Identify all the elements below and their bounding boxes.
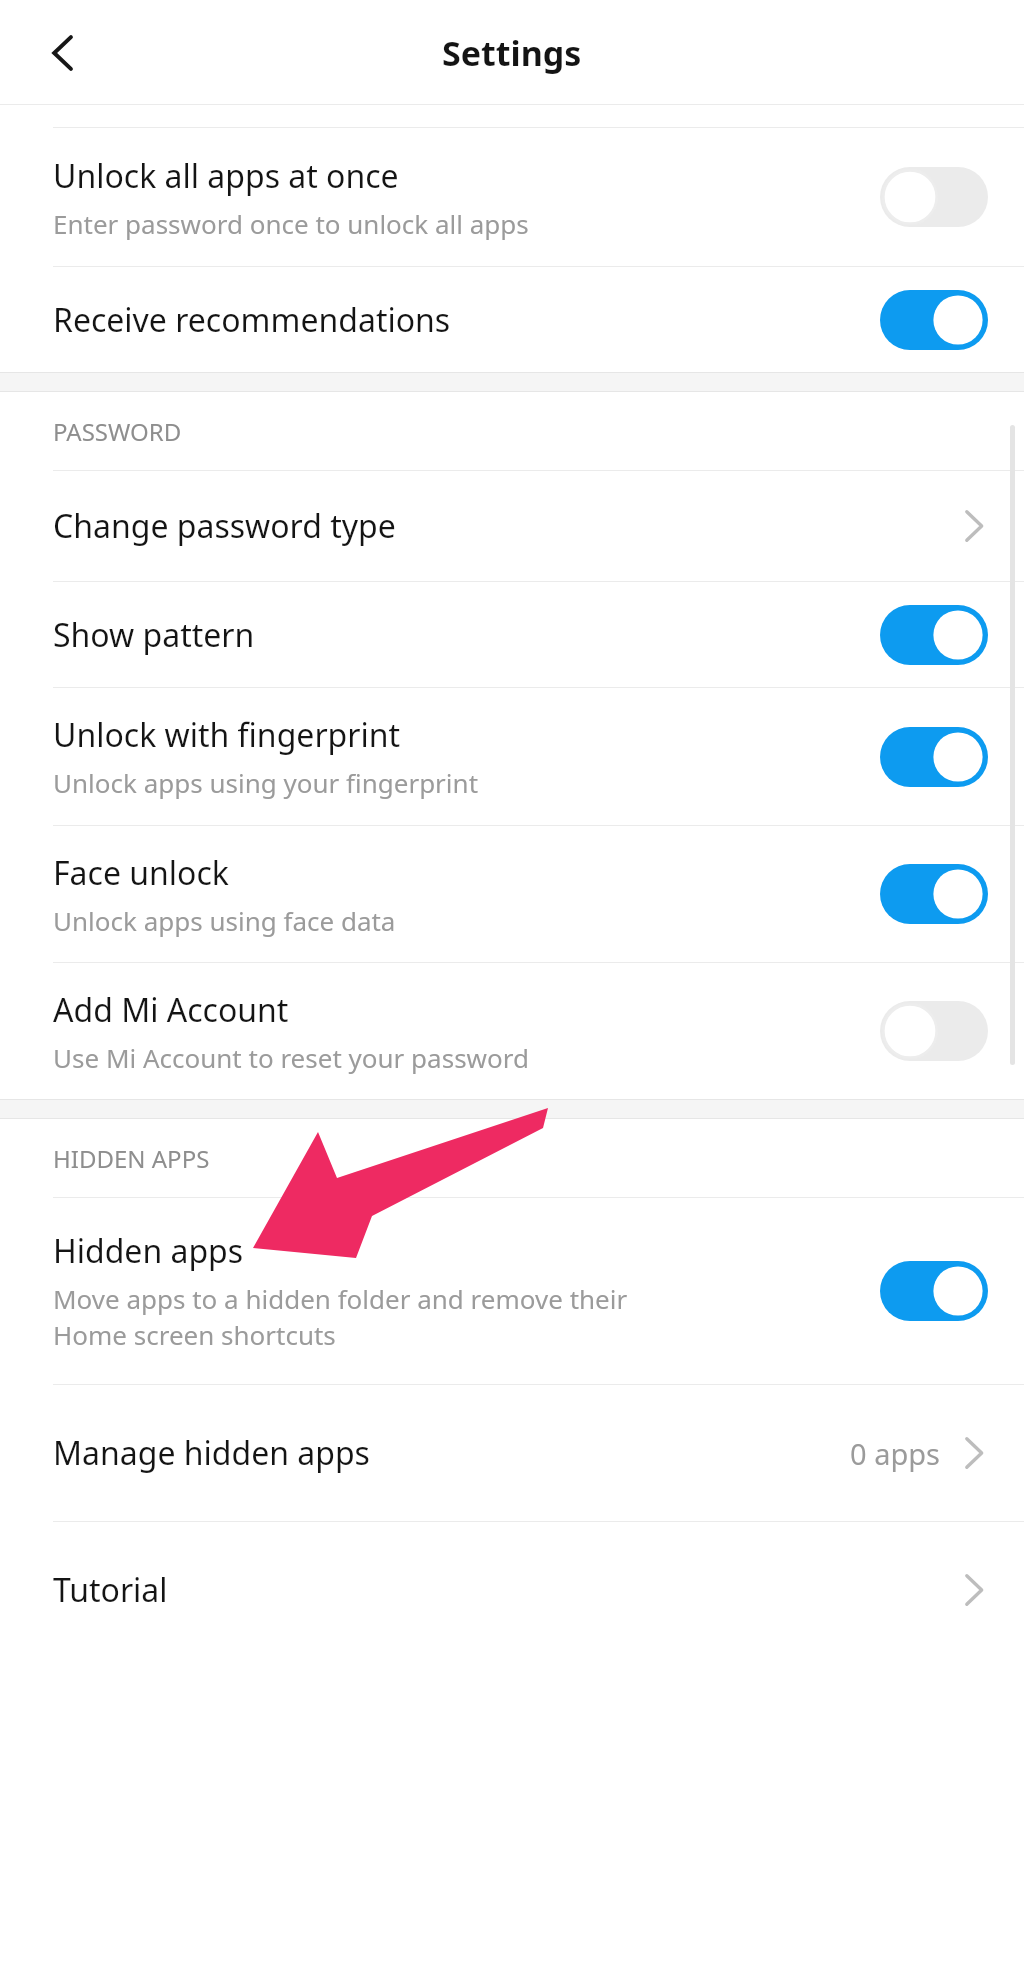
staticText: Unlock apps using face data bbox=[53, 903, 396, 938]
button[interactable]: Add Mi Account bbox=[0, 963, 1024, 1099]
staticText: Unlock all apps at once bbox=[53, 154, 399, 198]
staticText: Show pattern bbox=[53, 613, 255, 657]
staticText: Unlock apps using your fingerprint bbox=[53, 765, 479, 800]
button[interactable]: Face unlock bbox=[0, 826, 1024, 962]
button[interactable]: Back bbox=[20, 10, 106, 96]
staticText: Face unlock bbox=[53, 851, 229, 895]
button[interactable]: Hidden apps bbox=[0, 1198, 1024, 1384]
staticText: Unlock with fingerprint bbox=[53, 713, 401, 757]
staticText: Change password type bbox=[53, 504, 962, 548]
staticText: Add Mi Account bbox=[53, 988, 289, 1032]
button[interactable]: Enabled bbox=[880, 290, 988, 350]
staticText: 0 apps bbox=[850, 1434, 940, 1473]
staticText: Tutorial bbox=[53, 1568, 962, 1612]
staticText: Enter password once to unlock all apps bbox=[53, 206, 529, 241]
button[interactable]: Manage hidden apps bbox=[0, 1385, 1024, 1521]
button[interactable]: Enabled bbox=[880, 1261, 988, 1321]
button[interactable]: Enabled bbox=[880, 864, 988, 924]
button[interactable]: Receive recommendations bbox=[0, 267, 1024, 372]
staticText: PASSWORD bbox=[53, 415, 182, 448]
button[interactable]: Unlock with fingerprint bbox=[0, 688, 1024, 825]
staticText: Receive recommendations bbox=[53, 298, 451, 342]
staticText: Settings bbox=[442, 30, 582, 76]
button[interactable]: Enabled bbox=[880, 727, 988, 787]
staticText: Move apps to a hidden folder and remove … bbox=[53, 1281, 628, 1353]
button[interactable]: Disabled bbox=[880, 167, 988, 227]
staticText: Manage hidden apps bbox=[53, 1431, 850, 1475]
button[interactable]: Tutorial bbox=[0, 1522, 1024, 1658]
button[interactable]: Unlock all apps at once bbox=[0, 128, 1024, 266]
button[interactable]: Show pattern bbox=[0, 582, 1024, 687]
button[interactable]: Enabled bbox=[880, 605, 988, 665]
button[interactable]: Disabled bbox=[880, 1001, 988, 1061]
staticText: HIDDEN APPS bbox=[53, 1142, 210, 1175]
staticText: Hidden apps bbox=[53, 1229, 244, 1273]
staticText: Use Mi Account to reset your password bbox=[53, 1040, 529, 1075]
button[interactable]: Change password type bbox=[0, 471, 1024, 581]
